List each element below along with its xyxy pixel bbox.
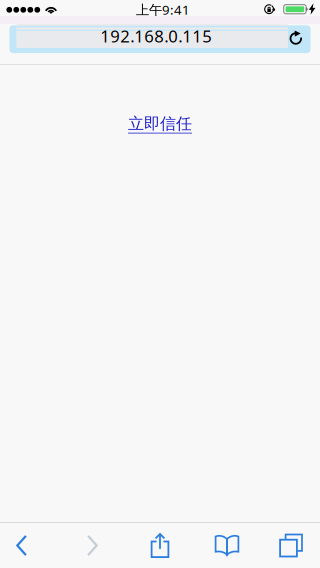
button[interactable]: 立即信任 <box>124 114 196 134</box>
button[interactable]: Share <box>138 523 182 568</box>
staticText: 立即信任 <box>128 114 192 134</box>
staticText: 上午9:41 <box>136 1 190 19</box>
button[interactable]: Tabs <box>269 523 313 568</box>
button[interactable]: Forward <box>70 523 114 568</box>
button[interactable]: Bookmarks <box>205 523 249 568</box>
staticText: 192.168.0.115 <box>100 25 212 47</box>
button[interactable]: Reload <box>288 28 310 56</box>
button[interactable]: Back <box>0 523 44 568</box>
